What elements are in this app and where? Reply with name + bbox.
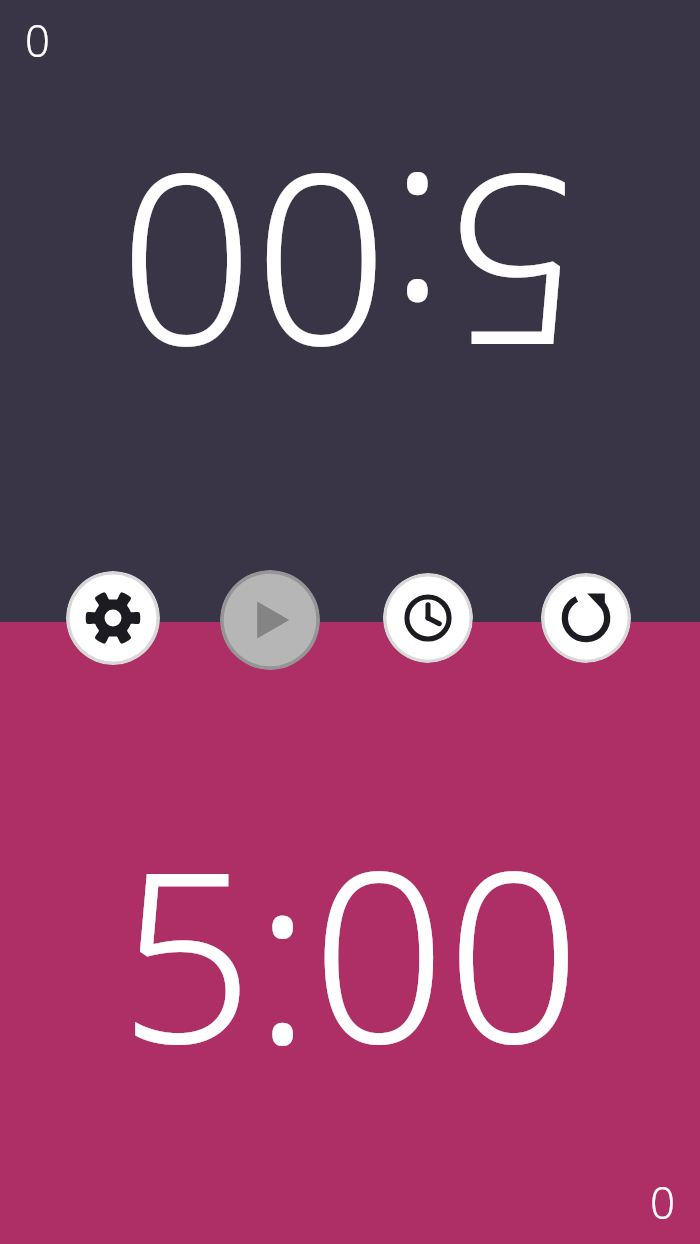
button[interactable]: Settings <box>66 571 160 665</box>
button[interactable]: Start <box>220 570 320 670</box>
button[interactable]: Reset <box>541 573 631 663</box>
button[interactable]: 5:00 <box>0 622 700 1244</box>
button[interactable]: Time control <box>383 573 473 663</box>
staticText: 5:00 <box>119 791 581 1112</box>
staticText: 0 <box>24 12 50 72</box>
staticText: 5:00 <box>119 106 581 427</box>
button[interactable]: 5:00 <box>0 0 700 622</box>
staticText: 0 <box>650 1172 676 1232</box>
